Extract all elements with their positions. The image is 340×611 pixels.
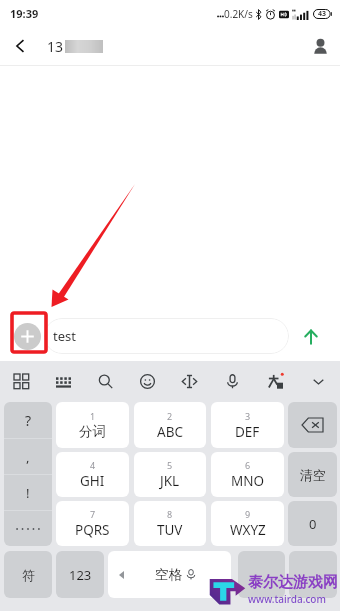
staticText: 6 <box>245 459 251 471</box>
button[interactable]: , <box>4 439 52 474</box>
staticText: DEF <box>235 423 260 441</box>
button[interactable]: test <box>44 318 289 354</box>
staticText: 9 <box>245 508 251 520</box>
staticText: ABC <box>157 423 183 441</box>
staticText: www.tairda.com <box>248 592 326 606</box>
button[interactable]: Back <box>0 27 40 65</box>
staticText: 2 <box>167 410 173 422</box>
button[interactable] <box>4 511 52 546</box>
staticText: 43 <box>318 9 327 19</box>
staticText: 4 <box>90 459 96 471</box>
button[interactable]: 5 <box>134 452 206 497</box>
staticText: 19:39 <box>10 6 39 21</box>
staticText: 8 <box>167 508 173 520</box>
button[interactable]: Voice <box>211 361 254 402</box>
button[interactable]: Cursor <box>168 361 211 402</box>
button[interactable] <box>289 551 337 598</box>
staticText: test <box>53 327 76 345</box>
button[interactable]: 清空 <box>288 452 337 497</box>
staticText: JKL <box>160 472 180 490</box>
staticText: ! <box>26 484 30 502</box>
button[interactable]: Send <box>289 315 332 358</box>
staticText: PQRS <box>75 521 110 539</box>
button[interactable]: 123 <box>56 551 104 598</box>
button[interactable]: 符 <box>4 551 52 598</box>
staticText: 7 <box>90 508 96 520</box>
staticText: 0.2K/s <box>224 7 253 21</box>
staticText: WXYZ <box>230 521 266 539</box>
button[interactable]: 8 <box>134 501 206 546</box>
button[interactable]: ? <box>4 402 52 438</box>
button[interactable]: Collapse <box>297 361 340 402</box>
staticText: 0 <box>309 515 317 533</box>
button[interactable]: 2 <box>134 402 206 448</box>
staticText: 3 <box>245 410 251 422</box>
button[interactable]: Keyboard <box>42 361 84 402</box>
button[interactable]: Translate <box>254 361 297 402</box>
staticText: , <box>26 448 30 466</box>
staticText: TUV <box>157 521 183 539</box>
button[interactable]: 7 <box>56 501 129 546</box>
staticText: 空格 <box>155 566 182 583</box>
staticText: 清空 <box>300 467 326 483</box>
button[interactable] <box>288 402 337 448</box>
button[interactable] <box>238 551 285 598</box>
button[interactable]: Emoji <box>126 361 168 402</box>
staticText: GHI <box>80 472 105 490</box>
button[interactable]: Apps <box>0 361 42 402</box>
button[interactable]: Search <box>84 361 126 402</box>
button[interactable]: Profile <box>300 27 340 65</box>
staticText: 13 <box>47 37 64 56</box>
staticText: 5 <box>167 459 173 471</box>
button[interactable]: 1 <box>56 402 129 448</box>
button[interactable]: 6 <box>211 452 284 497</box>
button[interactable]: ! <box>4 475 52 510</box>
button[interactable]: Add <box>14 323 41 350</box>
staticText: 分词 <box>79 423 106 440</box>
button[interactable]: 9 <box>211 501 284 546</box>
staticText: MNO <box>231 472 265 490</box>
button[interactable]: 4 <box>56 452 129 497</box>
staticText: 泰尔达游戏网 <box>248 573 338 592</box>
staticText: 1 <box>90 410 96 422</box>
staticText: ? <box>25 411 32 430</box>
button[interactable]: 0 <box>288 501 337 546</box>
button[interactable]: 空格 <box>108 551 231 598</box>
staticText: 符 <box>22 567 35 583</box>
staticText: 123 <box>69 566 92 584</box>
button[interactable]: 3 <box>211 402 284 448</box>
